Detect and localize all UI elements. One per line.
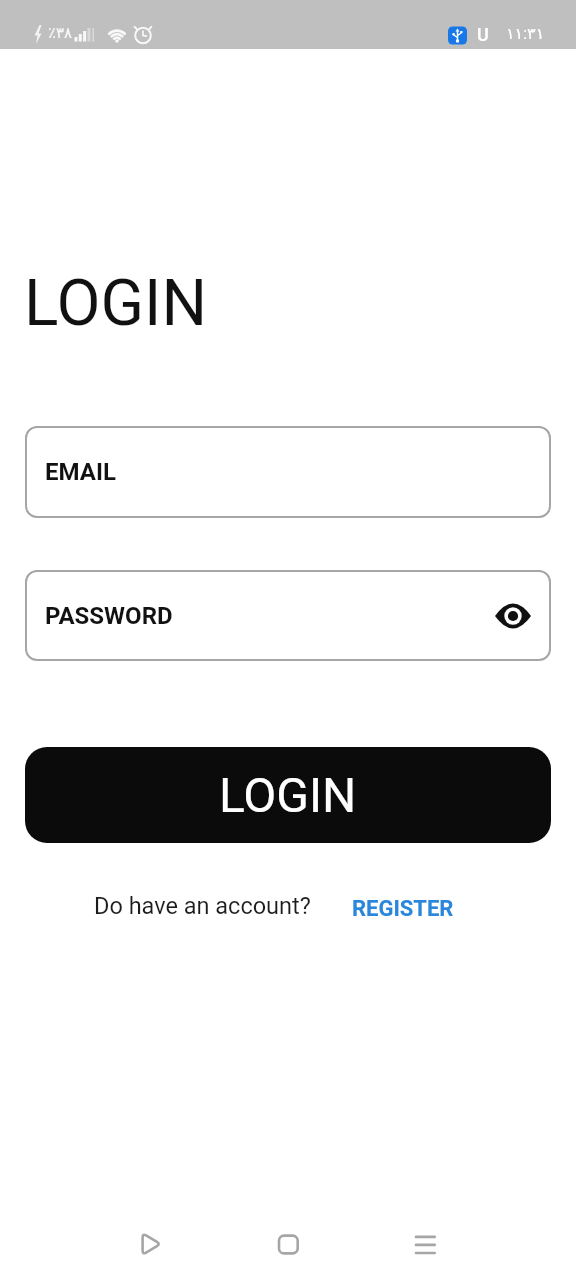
staticText: REGISTER [352,896,454,922]
staticText: LOGIN [24,266,208,341]
staticText: PASSWORD [45,602,173,630]
staticText: Do have an account? [94,892,311,920]
button[interactable]: LOGIN [25,747,551,843]
button[interactable]: PASSWORD [25,570,551,661]
button[interactable]: REGISTER [340,884,466,934]
button[interactable] [260,1216,316,1272]
button[interactable] [124,1216,180,1272]
staticText: LOGIN [219,767,357,823]
staticText: ١١:٣١ [506,24,545,43]
staticText: U [477,24,489,45]
staticText: ٪٣٨ [48,24,73,41]
button[interactable] [491,594,535,638]
button[interactable] [397,1216,453,1272]
staticText: EMAIL [45,458,116,486]
button[interactable]: EMAIL [25,426,551,518]
